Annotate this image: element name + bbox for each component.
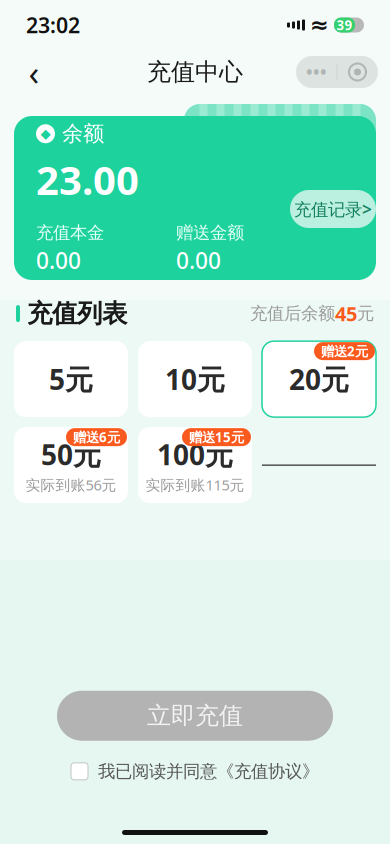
button[interactable]: 我已阅读并同意《充值协议》: [71, 755, 319, 788]
staticText: 20元: [289, 360, 349, 398]
staticText: 39: [336, 16, 352, 34]
button[interactable]: 100元: [138, 427, 252, 503]
staticText: 0.00: [36, 245, 81, 275]
staticText: 赠送6元: [73, 428, 120, 446]
button[interactable]: 立即充值: [57, 691, 333, 741]
staticText: 充值本金: [36, 222, 104, 243]
button[interactable]: Back: [12, 52, 56, 92]
staticText: 5元: [49, 360, 93, 398]
staticText: 赠送15元: [189, 428, 244, 446]
staticText: ◆: [40, 126, 50, 141]
staticText: 赠送2元: [321, 342, 368, 360]
staticText: 50元: [41, 436, 101, 473]
staticText: 充值列表: [27, 298, 127, 329]
staticText: 充值记录>: [294, 197, 372, 220]
staticText: ‹: [28, 49, 39, 95]
staticText: ≈: [310, 12, 329, 38]
staticText: 0.00: [176, 245, 221, 275]
button[interactable]: 50元: [14, 427, 128, 503]
staticText: 实际到账115元: [145, 475, 244, 494]
staticText: 充值中心: [147, 57, 243, 87]
button[interactable]: 充值记录>: [290, 190, 376, 228]
button[interactable]: More: [296, 56, 378, 88]
staticText: •••: [306, 60, 327, 83]
staticText: 充值后余额: [250, 303, 335, 324]
button[interactable]: 20元: [262, 341, 376, 417]
staticText: 立即充值: [147, 701, 243, 730]
staticText: 元: [357, 303, 374, 324]
staticText: 赠送金额: [176, 222, 244, 243]
button[interactable]: 10元: [138, 341, 252, 417]
staticText: 100元: [157, 436, 233, 473]
staticText: 实际到账56元: [25, 475, 116, 494]
staticText: 45: [335, 300, 357, 327]
staticText: 23:02: [26, 11, 80, 39]
button[interactable]: 5元: [14, 341, 128, 417]
staticText: 10元: [165, 360, 225, 398]
staticText: 余额: [62, 121, 104, 147]
staticText: 23.00: [36, 153, 139, 206]
staticText: 我已阅读并同意《充值协议》: [98, 761, 319, 782]
